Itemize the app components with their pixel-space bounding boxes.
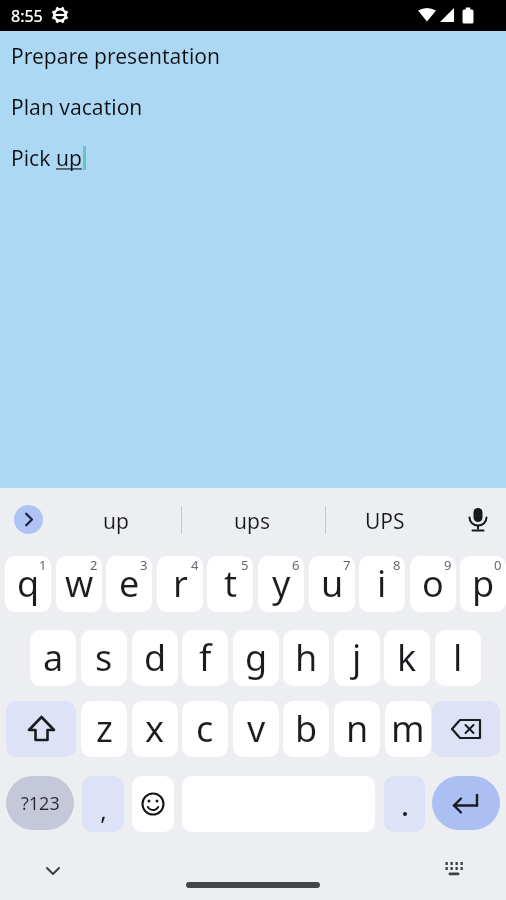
staticText: f	[199, 633, 212, 682]
staticText: h	[295, 633, 318, 682]
button[interactable]	[6, 701, 76, 757]
button[interactable]: i	[359, 556, 405, 612]
staticText: 4	[191, 556, 199, 574]
button[interactable]	[44, 862, 62, 880]
button[interactable]: up	[56, 506, 176, 536]
staticText: 3	[140, 556, 148, 574]
button[interactable]: c	[182, 701, 228, 757]
button[interactable]: g	[233, 630, 279, 686]
staticText: up	[56, 144, 82, 173]
staticText: j	[352, 633, 362, 682]
button[interactable]: s	[81, 630, 127, 686]
button[interactable]: t	[207, 556, 253, 612]
staticText: d	[144, 633, 167, 682]
staticText: w	[65, 559, 94, 608]
staticText: ,	[100, 792, 107, 827]
button[interactable]: u	[309, 556, 355, 612]
staticText: z	[96, 704, 113, 753]
staticText: Pick	[11, 144, 56, 173]
button[interactable]: w	[56, 556, 102, 612]
staticText: n	[346, 704, 369, 753]
staticText: 2	[90, 556, 98, 574]
button[interactable]: j	[334, 630, 380, 686]
button[interactable]: ups	[192, 506, 312, 536]
button[interactable]	[432, 776, 500, 830]
staticText: 8	[393, 556, 401, 574]
staticText: ?123	[21, 791, 60, 816]
staticText: 8:55	[11, 5, 43, 27]
button[interactable]: UPS	[325, 506, 445, 536]
staticText: ups	[234, 507, 270, 536]
staticText: t	[224, 559, 237, 608]
staticText: 1	[39, 556, 47, 574]
button[interactable]	[186, 882, 320, 888]
button[interactable]	[465, 507, 491, 533]
button[interactable]: f	[182, 630, 228, 686]
staticText: 9	[444, 556, 452, 574]
button[interactable]: z	[81, 701, 127, 757]
staticText: m	[391, 704, 425, 753]
button[interactable]	[14, 505, 43, 534]
button[interactable]	[132, 776, 174, 832]
button[interactable]: q	[5, 556, 51, 612]
staticText: 0	[494, 556, 502, 574]
staticText: b	[295, 704, 318, 753]
button[interactable]	[444, 860, 465, 878]
button[interactable]: p	[460, 556, 506, 612]
staticText: r	[173, 559, 188, 608]
button[interactable]: h	[283, 630, 329, 686]
staticText: y	[272, 559, 291, 608]
staticText: up	[103, 507, 129, 536]
button[interactable]: l	[435, 630, 481, 686]
button[interactable]: d	[132, 630, 178, 686]
staticText: v	[247, 704, 266, 753]
staticText: k	[397, 633, 417, 682]
button[interactable]: k	[384, 630, 430, 686]
button[interactable]: v	[233, 701, 279, 757]
button[interactable]: o	[410, 556, 456, 612]
staticText: q	[17, 559, 40, 608]
button[interactable]: a	[30, 630, 76, 686]
button[interactable]	[384, 776, 425, 832]
staticText: p	[472, 559, 495, 608]
staticText: o	[422, 559, 444, 608]
staticText: Plan vacation	[11, 93, 143, 122]
button[interactable]: y	[258, 556, 304, 612]
staticText: c	[196, 704, 214, 753]
staticText: s	[95, 633, 113, 682]
button[interactable]: ,	[82, 776, 124, 832]
staticText: 6	[292, 556, 300, 574]
staticText: e	[119, 559, 140, 608]
button[interactable]	[432, 701, 500, 757]
staticText: 7	[343, 556, 351, 574]
button[interactable]: ?123	[6, 776, 74, 830]
staticText: a	[43, 633, 64, 682]
button[interactable]: b	[283, 701, 329, 757]
staticText: UPS	[365, 507, 405, 536]
staticText: g	[245, 633, 268, 682]
button[interactable]: r	[157, 556, 203, 612]
staticText: u	[321, 559, 344, 608]
button[interactable]: e	[106, 556, 152, 612]
button[interactable]: m	[385, 701, 431, 757]
staticText: l	[453, 633, 463, 682]
staticText: Prepare presentation	[11, 42, 220, 71]
staticText: x	[145, 704, 165, 753]
staticText: i	[377, 559, 387, 608]
button[interactable]: n	[334, 701, 380, 757]
staticText: 5	[241, 556, 249, 574]
button[interactable]: x	[132, 701, 178, 757]
